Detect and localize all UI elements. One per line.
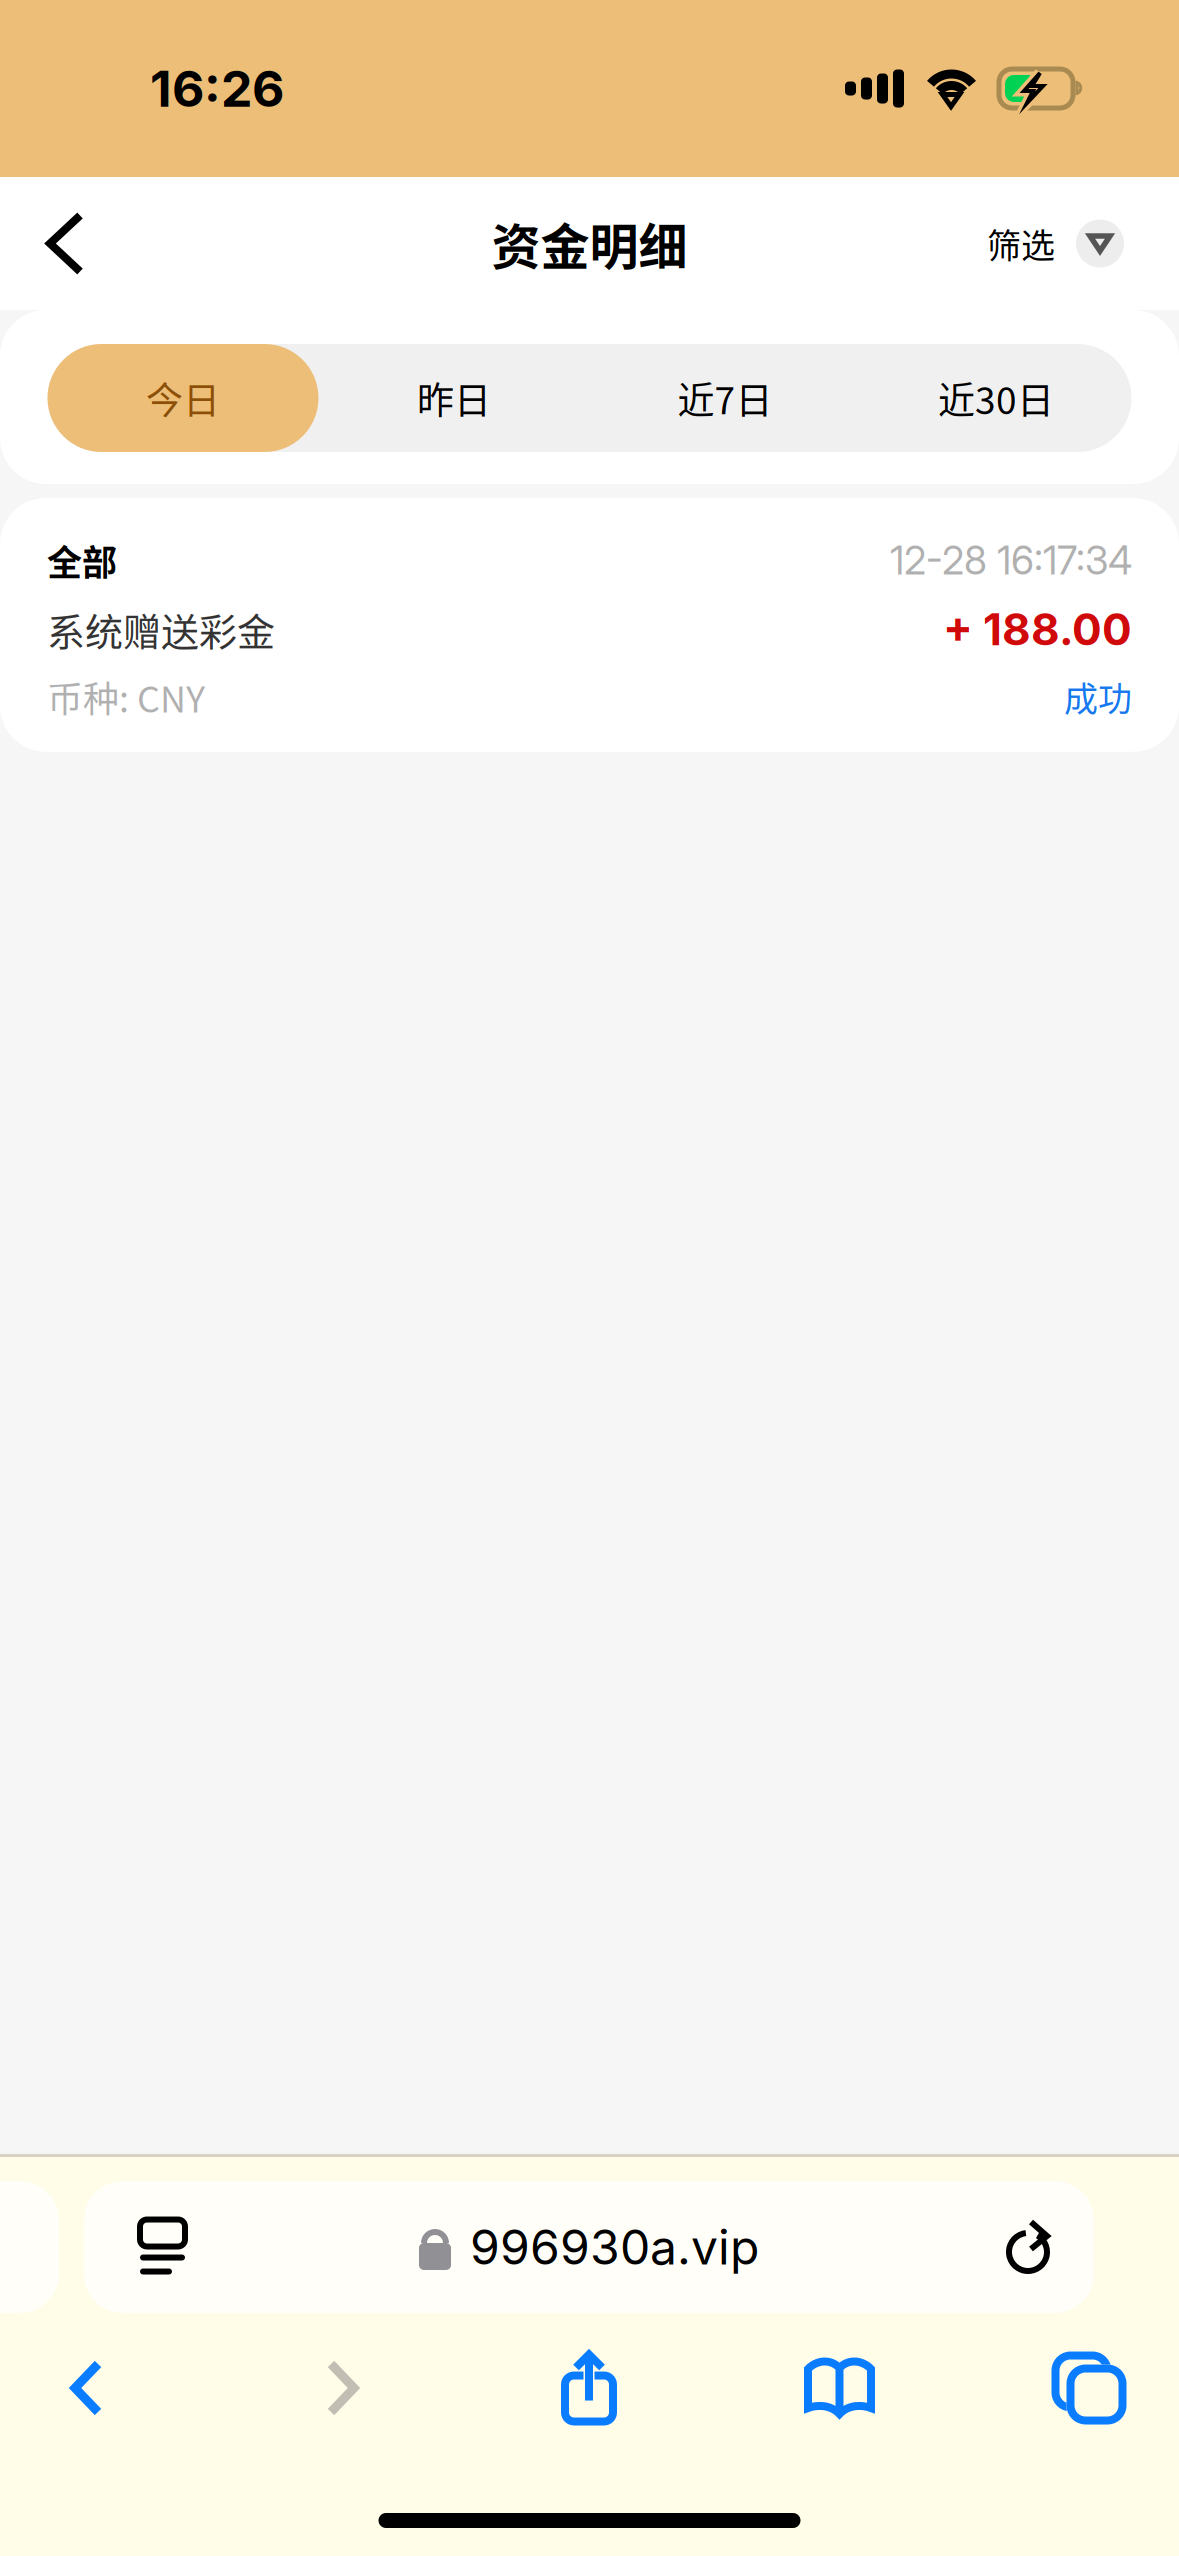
- button[interactable]: 返回: [0, 177, 124, 310]
- button[interactable]: 页面设置: [84, 2181, 241, 2313]
- button[interactable]: 书签: [666, 2333, 1013, 2443]
- button[interactable]: 筛选: [987, 177, 1179, 310]
- button[interactable]: 全部: [0, 498, 1179, 752]
- staticText: 近7日: [677, 371, 772, 425]
- staticText: 全部: [47, 535, 117, 586]
- button[interactable]: 刷新: [937, 2181, 1094, 2313]
- staticText: 昨日: [417, 371, 491, 425]
- staticText: 996930a.vip: [470, 2218, 759, 2276]
- staticText: 今日: [146, 371, 220, 425]
- staticText: 币种: CNY: [47, 671, 205, 723]
- staticText: 系统赠送彩金: [47, 602, 275, 657]
- button[interactable]: 昨日: [318, 344, 589, 452]
- button[interactable]: 后退: [0, 2333, 173, 2443]
- staticText: 16:26: [150, 58, 284, 119]
- staticText: 成功: [1064, 672, 1132, 721]
- button[interactable]: 标签页: [1013, 2333, 1165, 2443]
- button[interactable]: 今日: [47, 344, 318, 452]
- button[interactable]: 前进: [173, 2333, 512, 2443]
- button[interactable]: 近30日: [860, 344, 1131, 452]
- staticText: 筛选: [987, 219, 1055, 268]
- staticText: 近30日: [938, 371, 1054, 425]
- staticText: 12-28 16:17:34: [890, 537, 1132, 584]
- staticText: 资金明细: [491, 208, 687, 279]
- staticText: + 188.00: [943, 603, 1132, 656]
- button[interactable]: 分享: [512, 2333, 666, 2443]
- button[interactable]: 近7日: [589, 344, 860, 452]
